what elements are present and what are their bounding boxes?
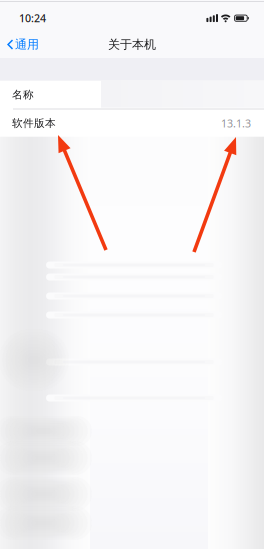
button[interactable]: 名称	[0, 81, 264, 109]
staticText: 名称	[12, 88, 34, 101]
staticText: 10:24	[19, 11, 46, 25]
button[interactable]: 软件版本	[0, 109, 264, 137]
staticText: 13.1.3	[221, 116, 251, 130]
button[interactable]: 通用	[0, 31, 90, 58]
staticText: 软件版本	[12, 117, 56, 130]
staticText: 通用	[15, 37, 39, 52]
staticText: 关于本机	[108, 37, 156, 52]
